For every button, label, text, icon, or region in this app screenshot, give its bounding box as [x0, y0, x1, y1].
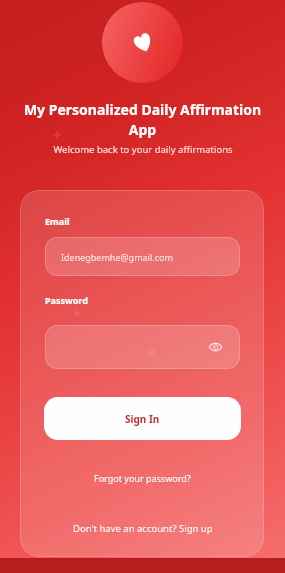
- button[interactable]: Show password: [204, 336, 226, 358]
- staticText: Don't have an account? Sign up: [73, 522, 213, 535]
- button[interactable]: Sign In: [44, 397, 241, 440]
- button[interactable]: Idenegbemhe@gmail.com: [45, 237, 240, 276]
- staticText: Forgot your password?: [94, 472, 191, 484]
- button[interactable]: Show password: [45, 325, 240, 369]
- staticText: Idenegbemhe@gmail.com: [61, 251, 173, 263]
- button[interactable]: Forgot your password?: [86, 468, 199, 488]
- staticText: Sign In: [125, 412, 160, 426]
- staticText: Welcome back to your daily affirmations: [53, 143, 233, 156]
- staticText: Email: [45, 215, 70, 227]
- button[interactable]: Don't have an account? Sign up: [65, 518, 221, 539]
- staticText: Password: [45, 294, 88, 306]
- staticText: My Personalized Daily Affirmation App: [12, 100, 273, 139]
